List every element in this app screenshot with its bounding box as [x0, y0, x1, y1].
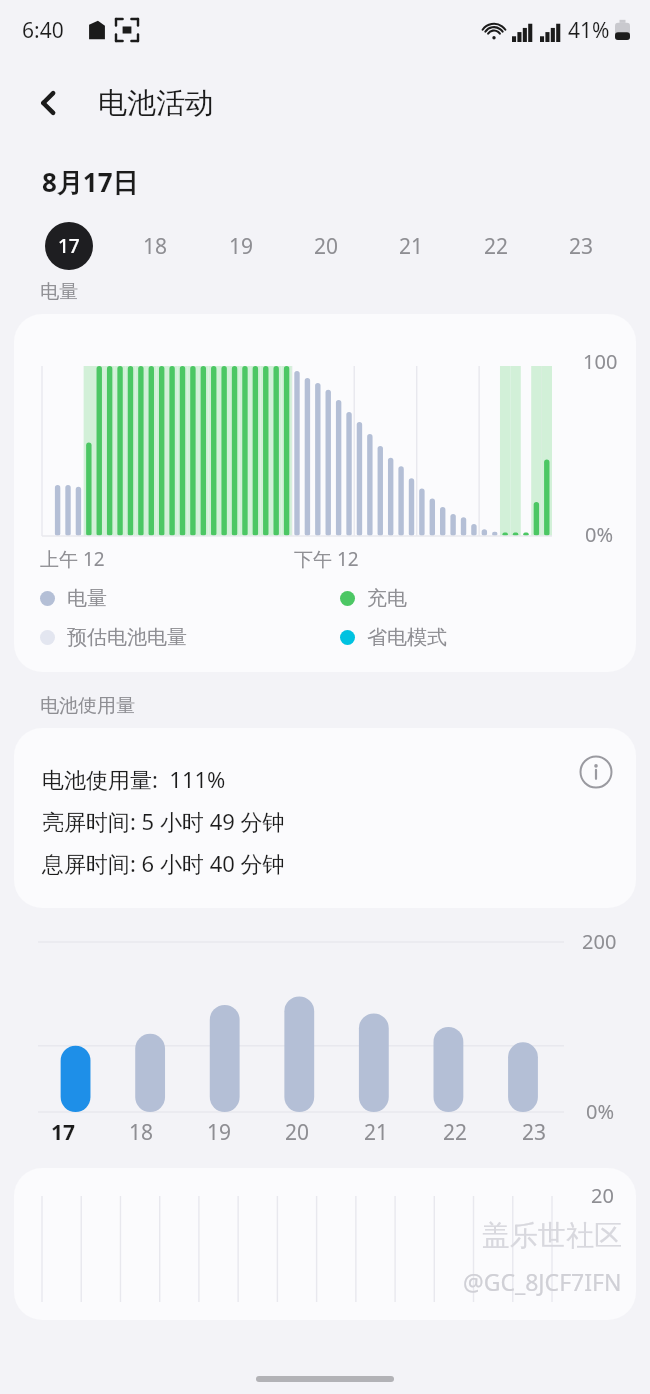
staticText: 6:40 — [22, 16, 64, 45]
button[interactable]: 22 — [454, 218, 539, 274]
button[interactable]: Back — [26, 80, 72, 126]
staticText: 21 — [364, 1118, 389, 1147]
staticText: 亮屏时间: 5 小时 49 分钟 — [42, 806, 285, 836]
staticText: 电池使用量: 111% — [42, 764, 226, 794]
staticText: 19 — [229, 232, 254, 261]
staticText: 电池活动 — [98, 85, 214, 122]
staticText: @GC_8JCF7IFN — [463, 1266, 622, 1297]
button[interactable]: 20 — [14, 1168, 636, 1320]
staticText: 20 — [591, 1182, 614, 1209]
button[interactable]: Info — [574, 750, 618, 794]
staticText: 20 — [285, 1118, 310, 1147]
staticText: 省电模式 — [367, 625, 447, 650]
staticText: 0% — [586, 1098, 615, 1125]
staticText: 0% — [585, 521, 614, 548]
staticText: 22 — [484, 232, 509, 261]
button[interactable]: 100 — [14, 314, 636, 672]
staticText: 电量 — [40, 280, 78, 304]
staticText: 盖乐世社区 — [482, 1218, 622, 1253]
staticText: 22 — [443, 1118, 468, 1147]
staticText: 预估电池电量 — [67, 625, 187, 650]
staticText: 19 — [207, 1118, 232, 1147]
button[interactable]: 17 — [26, 218, 112, 274]
button[interactable]: 23 — [539, 218, 624, 274]
staticText: 电量 — [67, 586, 107, 611]
staticText: 17 — [51, 1118, 76, 1147]
staticText: 下午 12 — [294, 546, 359, 572]
staticText: 100 — [583, 348, 618, 375]
staticText: 20 — [314, 232, 339, 261]
staticText: 41% — [568, 16, 610, 45]
staticText: 17 — [58, 233, 80, 259]
staticText: 上午 12 — [40, 546, 105, 572]
button[interactable]: 19 — [198, 218, 284, 274]
staticText: 充电 — [367, 586, 407, 611]
staticText: 21 — [399, 232, 424, 261]
button[interactable]: 18 — [112, 218, 198, 274]
staticText: 电池使用量 — [40, 694, 135, 718]
button[interactable]: 电池使用量: 111% — [14, 728, 636, 908]
button[interactable]: 21 — [369, 218, 454, 274]
staticText: 8月17日 — [42, 164, 139, 200]
staticText: 23 — [522, 1118, 547, 1147]
staticText: 200 — [582, 928, 617, 955]
staticText: 18 — [143, 232, 168, 261]
staticText: 18 — [129, 1118, 154, 1147]
staticText: 23 — [569, 232, 594, 261]
staticText: 息屏时间: 6 小时 40 分钟 — [42, 848, 285, 878]
button[interactable]: 20 — [284, 218, 369, 274]
